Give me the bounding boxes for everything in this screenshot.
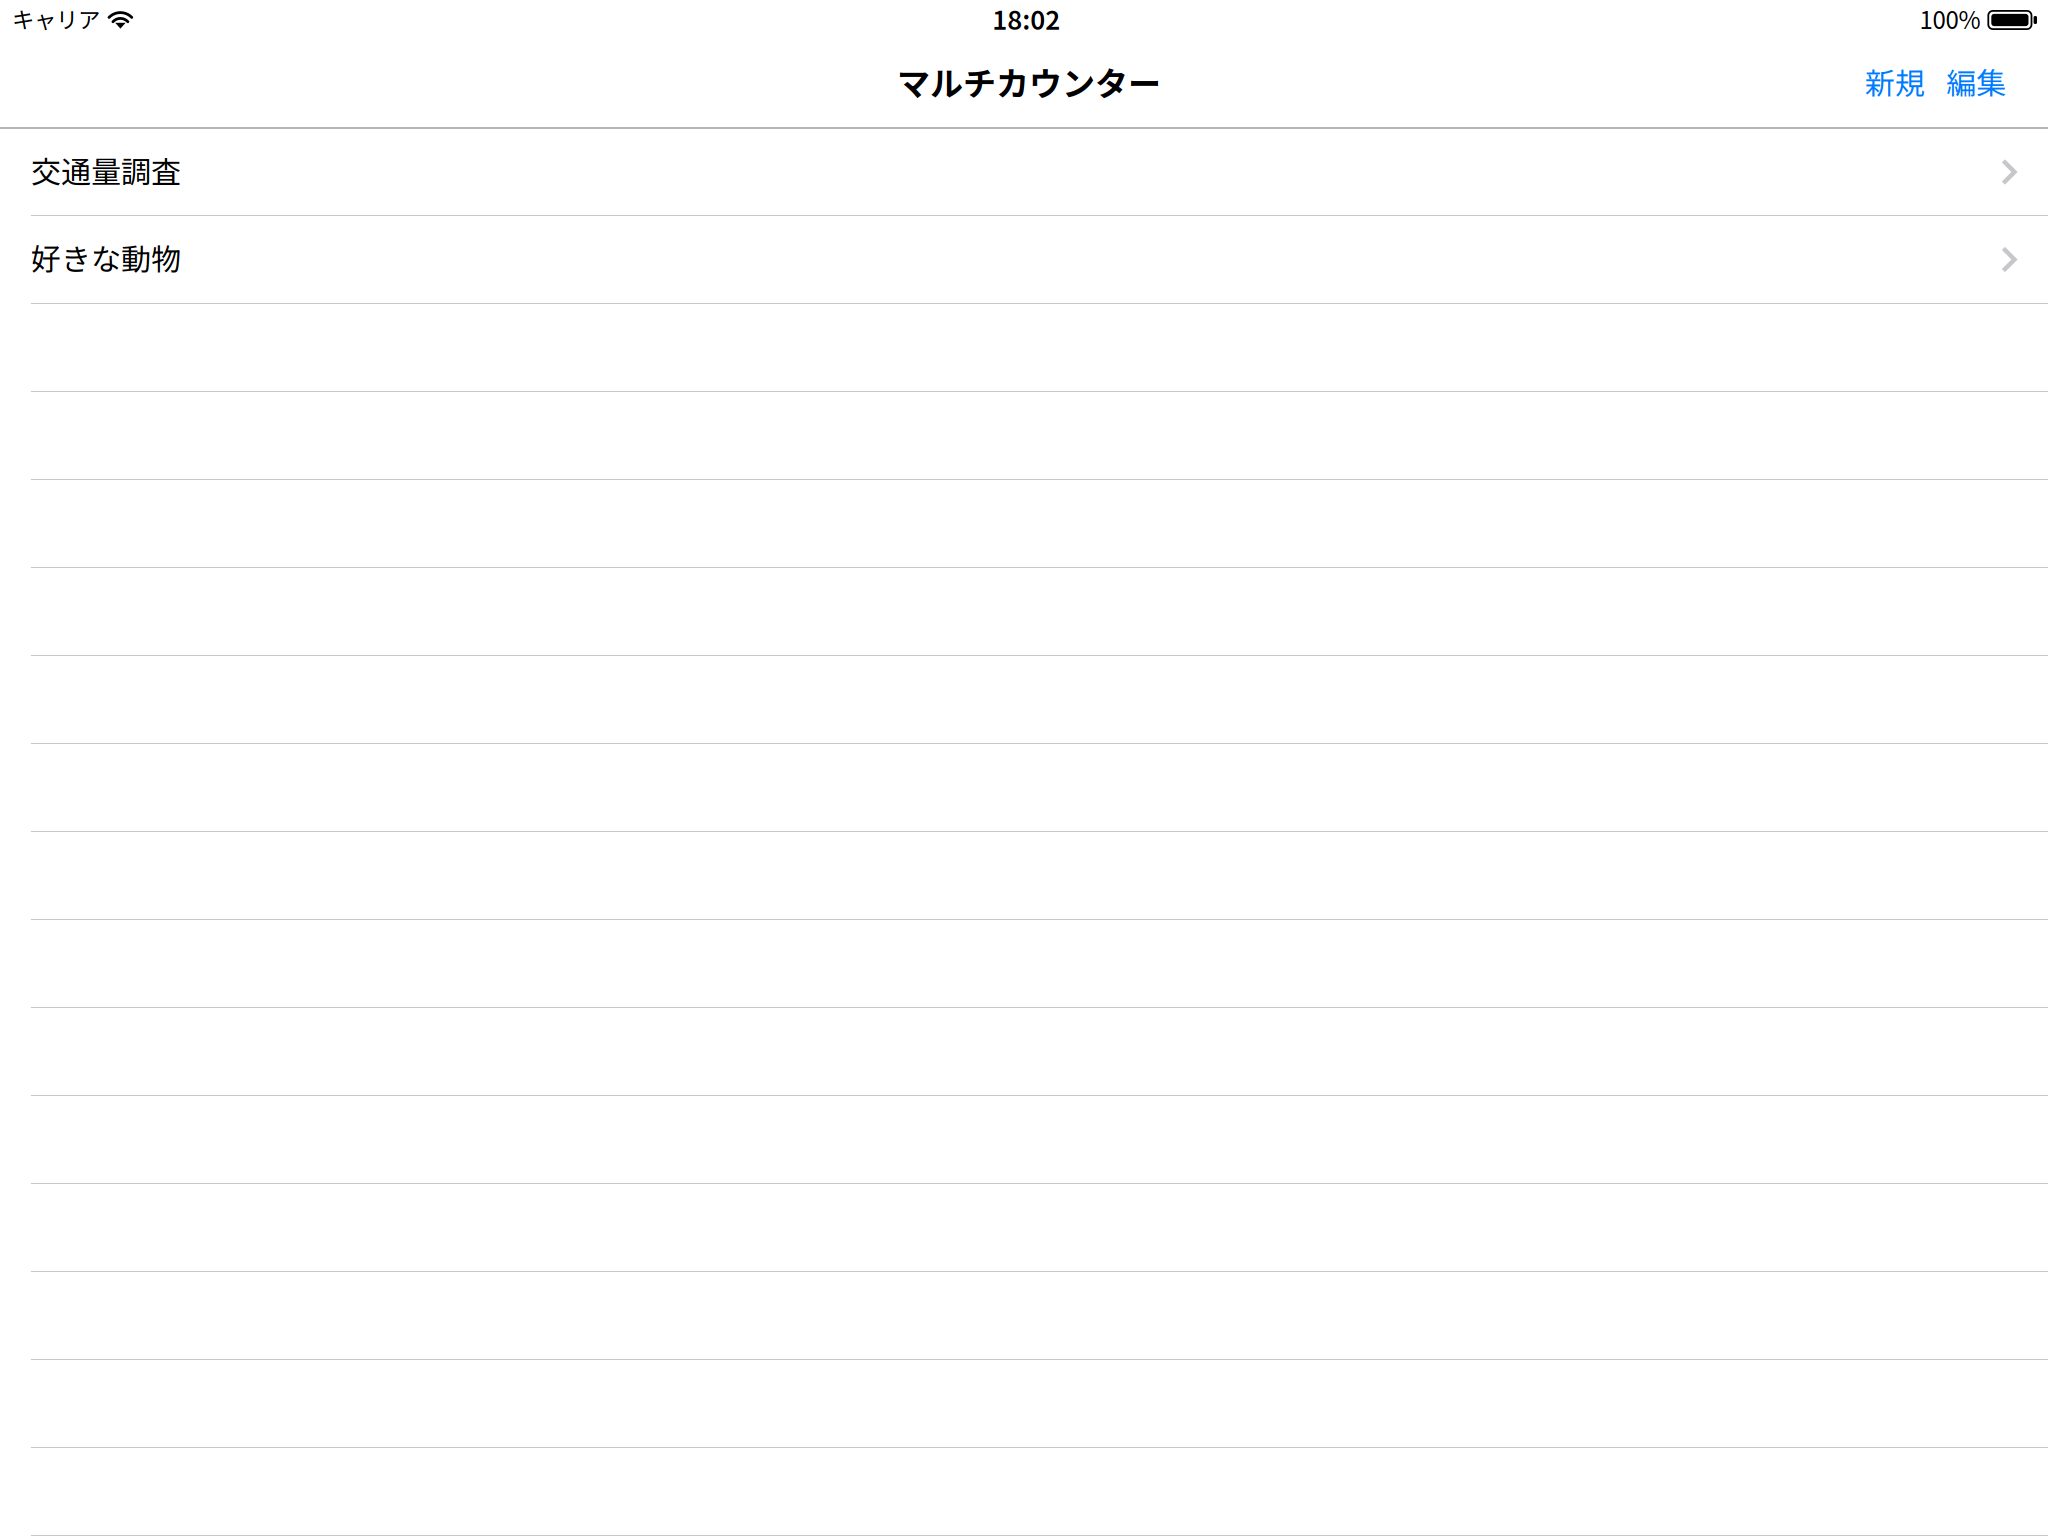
button[interactable]: 交通量調査 — [0, 129, 2048, 216]
button[interactable]: 好きな動物 — [0, 216, 2048, 304]
button[interactable]: 新規 — [1865, 60, 1925, 107]
staticText: マルチカウンター — [897, 58, 1161, 105]
staticText: 編集 — [1946, 60, 2006, 103]
staticText: キャリア — [12, 2, 100, 35]
staticText: 100% — [1919, 1, 1980, 36]
staticText: 18:02 — [992, 0, 1060, 37]
staticText: 好きな動物 — [31, 236, 181, 279]
button[interactable]: 編集 — [1946, 60, 2006, 107]
staticText: 新規 — [1865, 60, 1925, 103]
staticText: 交通量調査 — [31, 148, 181, 192]
